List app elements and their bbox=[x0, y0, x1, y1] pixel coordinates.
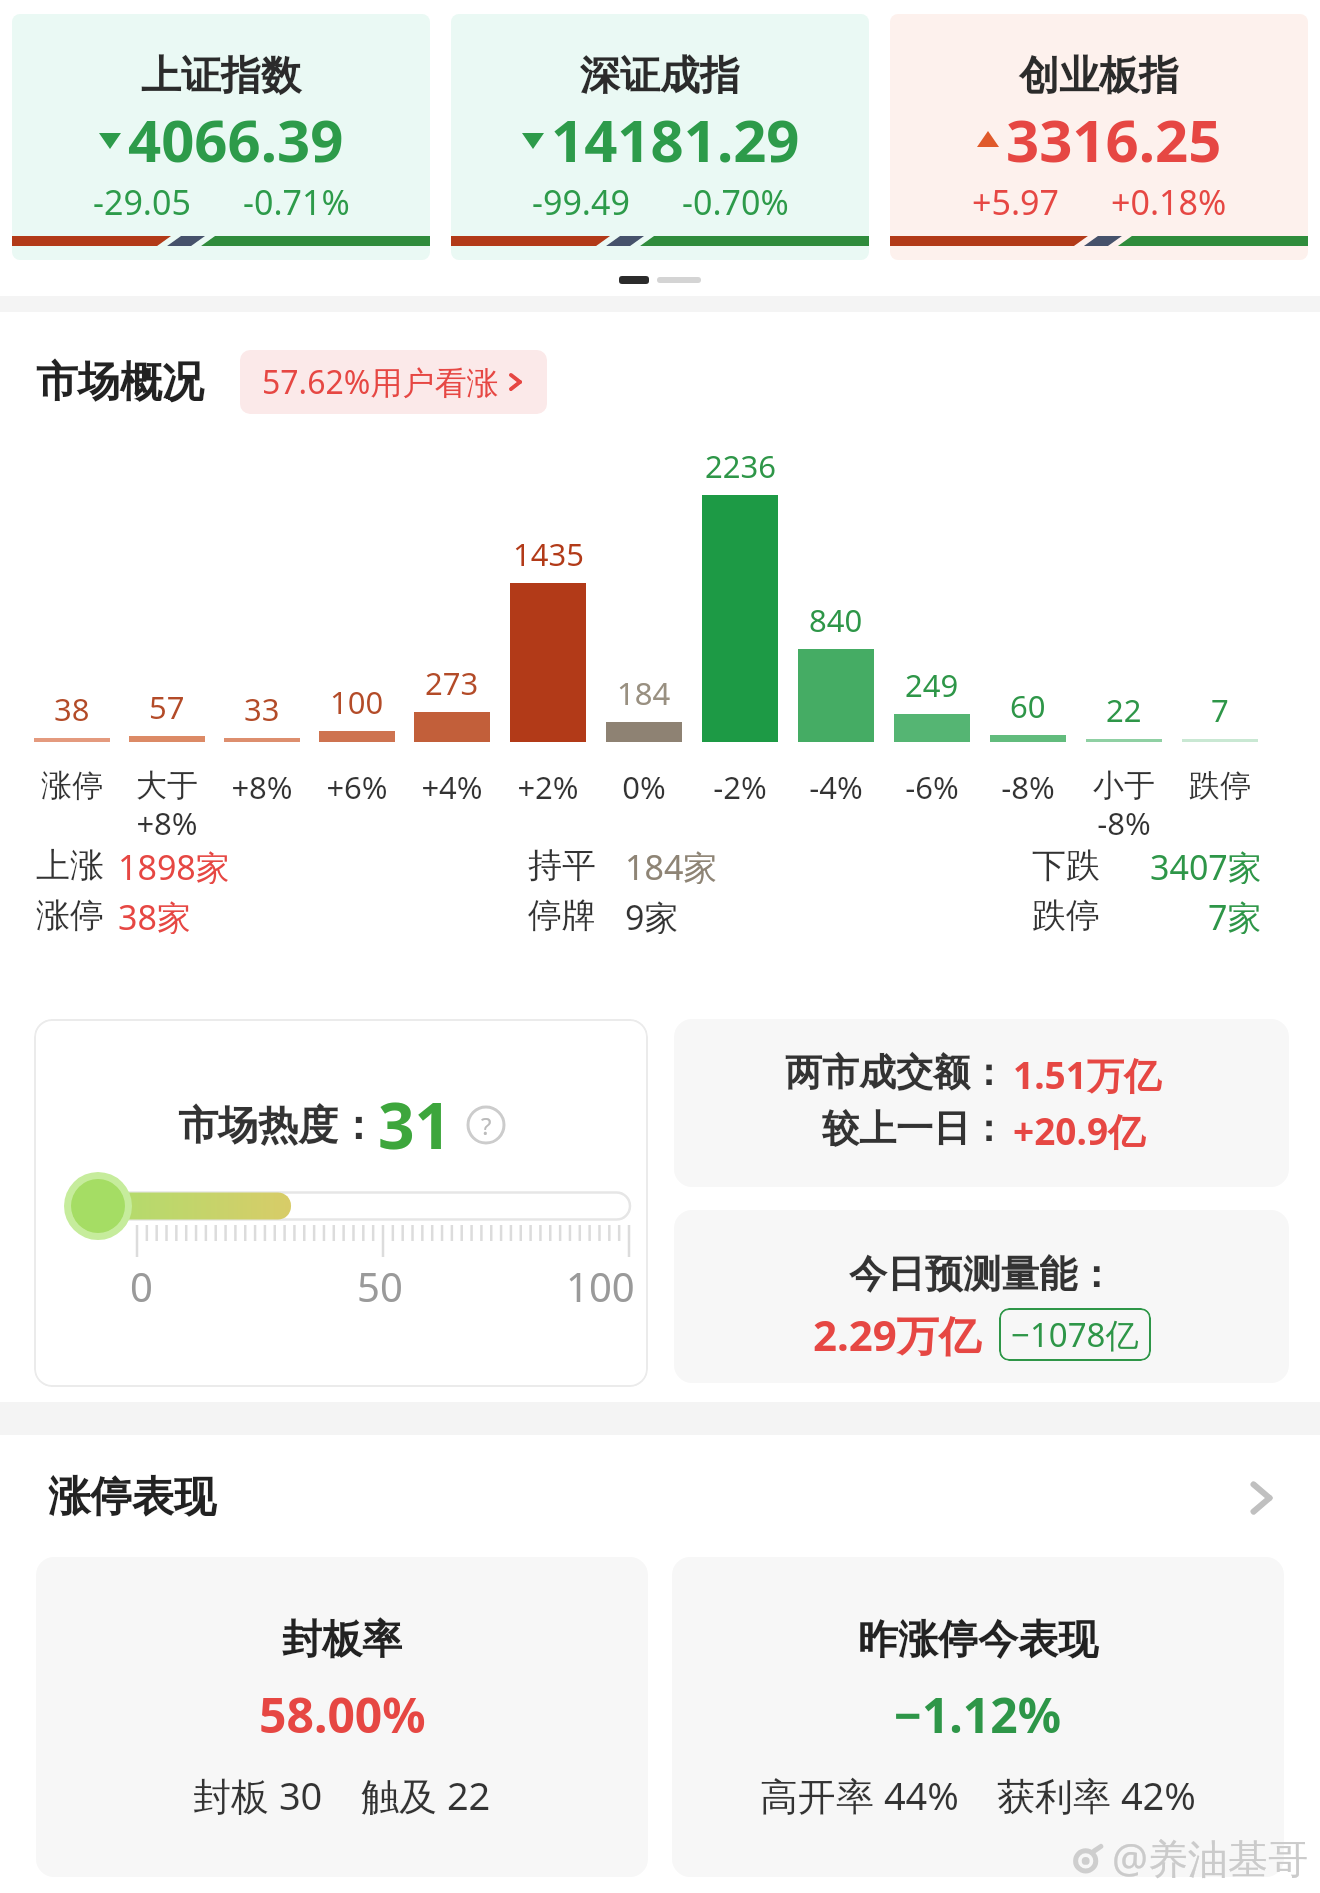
staticText: 273 bbox=[425, 662, 479, 704]
staticText: 57 bbox=[149, 686, 185, 728]
staticText: 封板率 bbox=[282, 1614, 402, 1664]
button[interactable]: 上证指数 bbox=[12, 14, 430, 260]
staticText: 2.29万亿 bbox=[813, 1306, 981, 1363]
staticText: 涨停 bbox=[36, 894, 104, 934]
staticText: 0 bbox=[130, 1259, 153, 1313]
staticText: 今日预测量能： bbox=[849, 1250, 1115, 1298]
staticText: 3407家 bbox=[1150, 844, 1262, 884]
staticText: -0.70% bbox=[682, 179, 789, 225]
staticText: 100 bbox=[330, 681, 384, 723]
staticText: 大于 +8% bbox=[136, 766, 198, 844]
staticText: -99.49 bbox=[532, 179, 630, 225]
button[interactable]: 两市成交额： bbox=[674, 1019, 1289, 1187]
staticText: −1078亿 bbox=[1011, 1312, 1139, 1357]
staticText: +4% bbox=[421, 766, 483, 808]
staticText: 100 bbox=[566, 1259, 635, 1313]
staticText: ? bbox=[481, 1109, 492, 1142]
staticText: 上证指数 bbox=[141, 50, 301, 100]
staticText: 22 bbox=[1106, 689, 1142, 731]
staticText: 184 bbox=[617, 672, 671, 714]
button[interactable]: 深证成指 bbox=[451, 14, 869, 260]
staticText: 3316.25 bbox=[1006, 100, 1222, 179]
staticText: +2% bbox=[517, 766, 579, 808]
staticText: 获利率 42% bbox=[997, 1769, 1196, 1821]
staticText: 38家 bbox=[118, 894, 191, 934]
staticText: 31 bbox=[378, 1081, 452, 1168]
staticText: 9家 bbox=[625, 894, 679, 934]
staticText: 2236 bbox=[705, 445, 776, 487]
staticText: -8% bbox=[1001, 766, 1055, 808]
staticText: 封板 30 bbox=[193, 1769, 323, 1821]
button[interactable]: 市场热度： bbox=[34, 1019, 648, 1387]
staticText: -29.05 bbox=[93, 179, 191, 225]
staticText: 7家 bbox=[1208, 894, 1262, 934]
staticText: 上涨 bbox=[36, 844, 104, 884]
staticText: 昨涨停今表现 bbox=[858, 1614, 1098, 1664]
staticText: +8% bbox=[231, 766, 293, 808]
staticText: 较上一日： bbox=[822, 1105, 1007, 1152]
staticText: 0% bbox=[622, 766, 666, 808]
staticText: 14181.29 bbox=[551, 100, 800, 179]
staticText: 7 bbox=[1211, 689, 1229, 731]
staticText: -4% bbox=[809, 766, 863, 808]
staticText: 38 bbox=[54, 688, 90, 730]
staticText: 4066.39 bbox=[128, 100, 344, 179]
staticText: 两市成交额： bbox=[785, 1049, 1007, 1096]
staticText: −1.12% bbox=[894, 1682, 1062, 1747]
staticText: 840 bbox=[809, 599, 863, 641]
staticText: 58.00% bbox=[259, 1682, 426, 1747]
button[interactable]: 封板率 bbox=[36, 1557, 648, 1877]
staticText: 60 bbox=[1010, 685, 1046, 727]
staticText: 跌停 bbox=[1189, 766, 1251, 805]
staticText: -0.71% bbox=[243, 179, 350, 225]
staticText: 1435 bbox=[513, 533, 584, 575]
staticText: 深证成指 bbox=[580, 50, 740, 100]
staticText: -2% bbox=[713, 766, 767, 808]
staticText: 持平 bbox=[528, 844, 596, 884]
staticText: @养油基哥 bbox=[1112, 1830, 1308, 1885]
staticText: 小于 -8% bbox=[1093, 766, 1155, 844]
staticText: 涨停 bbox=[41, 766, 103, 805]
staticText: 市场概况 bbox=[36, 356, 204, 409]
staticText: 57.62%用户看涨 bbox=[262, 360, 499, 404]
staticText: +0.18% bbox=[1111, 179, 1227, 225]
staticText: 触及 22 bbox=[361, 1769, 491, 1821]
staticText: 50 bbox=[357, 1259, 403, 1313]
staticText: 跌停 bbox=[1032, 894, 1100, 934]
button[interactable]: 57.62%用户看涨 bbox=[240, 350, 547, 414]
staticText: 1898家 bbox=[118, 844, 230, 884]
staticText: 184家 bbox=[625, 844, 718, 884]
staticText: 1.51万亿 bbox=[1013, 1049, 1161, 1100]
staticText: 市场热度： bbox=[178, 1100, 378, 1150]
button[interactable]: 昨涨停今表现 bbox=[672, 1557, 1284, 1877]
staticText: 创业板指 bbox=[1019, 50, 1179, 100]
staticText: +20.9亿 bbox=[1013, 1105, 1146, 1156]
staticText: 停牌 bbox=[528, 894, 596, 934]
staticText: +6% bbox=[326, 766, 388, 808]
staticText: 高开率 44% bbox=[760, 1769, 959, 1821]
staticText: 33 bbox=[244, 688, 280, 730]
staticText: 下跌 bbox=[1032, 844, 1100, 884]
button[interactable]: 创业板指 bbox=[890, 14, 1308, 260]
staticText: 249 bbox=[905, 664, 959, 706]
button[interactable]: 今日预测量能： bbox=[674, 1210, 1289, 1383]
staticText: -6% bbox=[905, 766, 959, 808]
staticText: 涨停表现 bbox=[48, 1471, 216, 1524]
staticText: +5.97 bbox=[972, 179, 1059, 225]
button[interactable] bbox=[1244, 1481, 1278, 1515]
